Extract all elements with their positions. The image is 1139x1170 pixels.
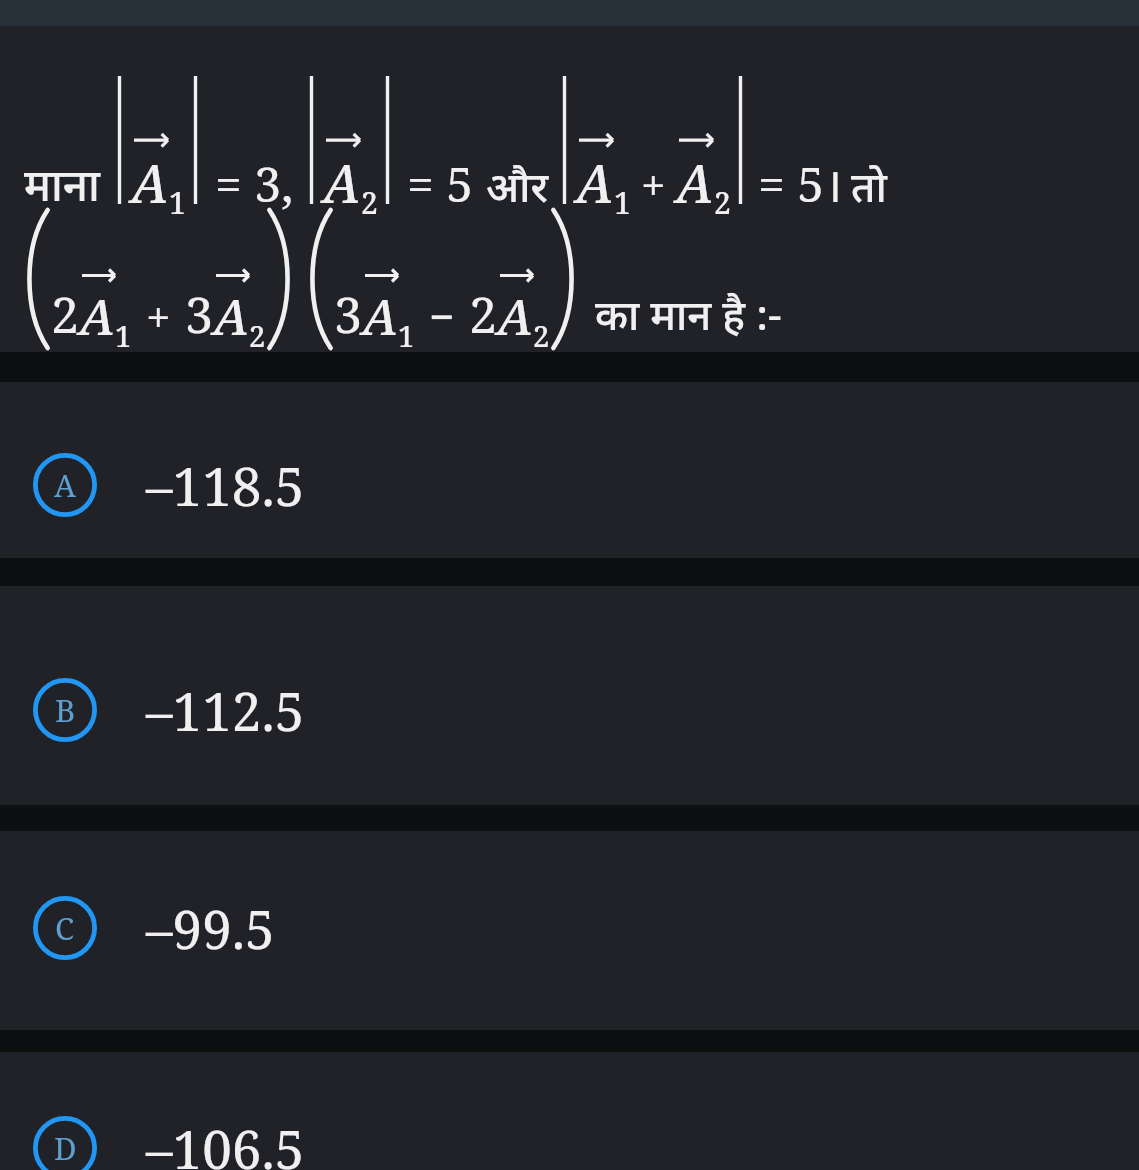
- staticText: 1: [398, 316, 415, 355]
- staticText: A: [362, 282, 398, 350]
- staticText: D: [54, 1127, 77, 1169]
- staticText: 3: [185, 280, 213, 348]
- staticText: +: [641, 154, 666, 214]
- staticText: 3: [334, 280, 362, 348]
- staticText: –112.5: [146, 674, 305, 746]
- staticText: C: [55, 907, 75, 949]
- staticText: A: [576, 147, 614, 218]
- staticText: 2: [361, 182, 378, 223]
- staticText: 1: [614, 182, 631, 223]
- staticText: 2: [533, 316, 550, 355]
- staticText: −: [429, 286, 455, 346]
- staticText: A: [131, 147, 169, 218]
- staticText: और: [486, 157, 549, 214]
- staticText: माना: [24, 154, 100, 214]
- staticText: A: [497, 282, 533, 350]
- staticText: = 5: [407, 151, 474, 216]
- button[interactable]: Option B, –112.5: [0, 586, 1139, 805]
- staticText: +: [146, 286, 171, 346]
- button[interactable]: Option A, –118.5: [0, 382, 1139, 558]
- staticText: B: [55, 689, 76, 731]
- staticText: = 5।: [758, 151, 843, 216]
- button[interactable]: Option D, –106.5: [0, 1052, 1139, 1170]
- button[interactable]: Option C, –99.5: [0, 831, 1139, 1030]
- staticText: A: [323, 147, 361, 218]
- staticText: 1: [115, 316, 132, 355]
- staticText: –99.5: [146, 892, 275, 964]
- staticText: 2: [469, 280, 497, 348]
- staticText: 1: [169, 182, 186, 223]
- staticText: = 3,: [215, 151, 294, 216]
- staticText: A: [79, 282, 115, 350]
- staticText: तो: [851, 157, 887, 214]
- staticText: 2: [714, 182, 731, 223]
- staticText: –118.5: [146, 449, 305, 521]
- staticText: –106.5: [146, 1112, 305, 1170]
- staticText: A: [676, 147, 714, 218]
- staticText: 2: [249, 316, 266, 355]
- staticText: 2: [51, 280, 79, 348]
- staticText: का मान है :-: [595, 285, 782, 342]
- staticText: A: [213, 282, 249, 350]
- staticText: A: [54, 464, 76, 506]
